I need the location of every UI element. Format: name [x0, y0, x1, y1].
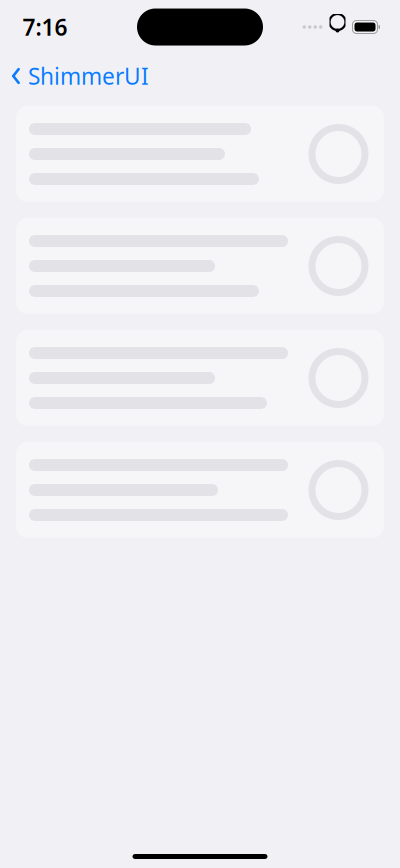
staticText: 7:16 [22, 12, 67, 42]
button[interactable]: ShimmerUI [0, 55, 149, 97]
staticText: ShimmerUI [28, 61, 149, 91]
